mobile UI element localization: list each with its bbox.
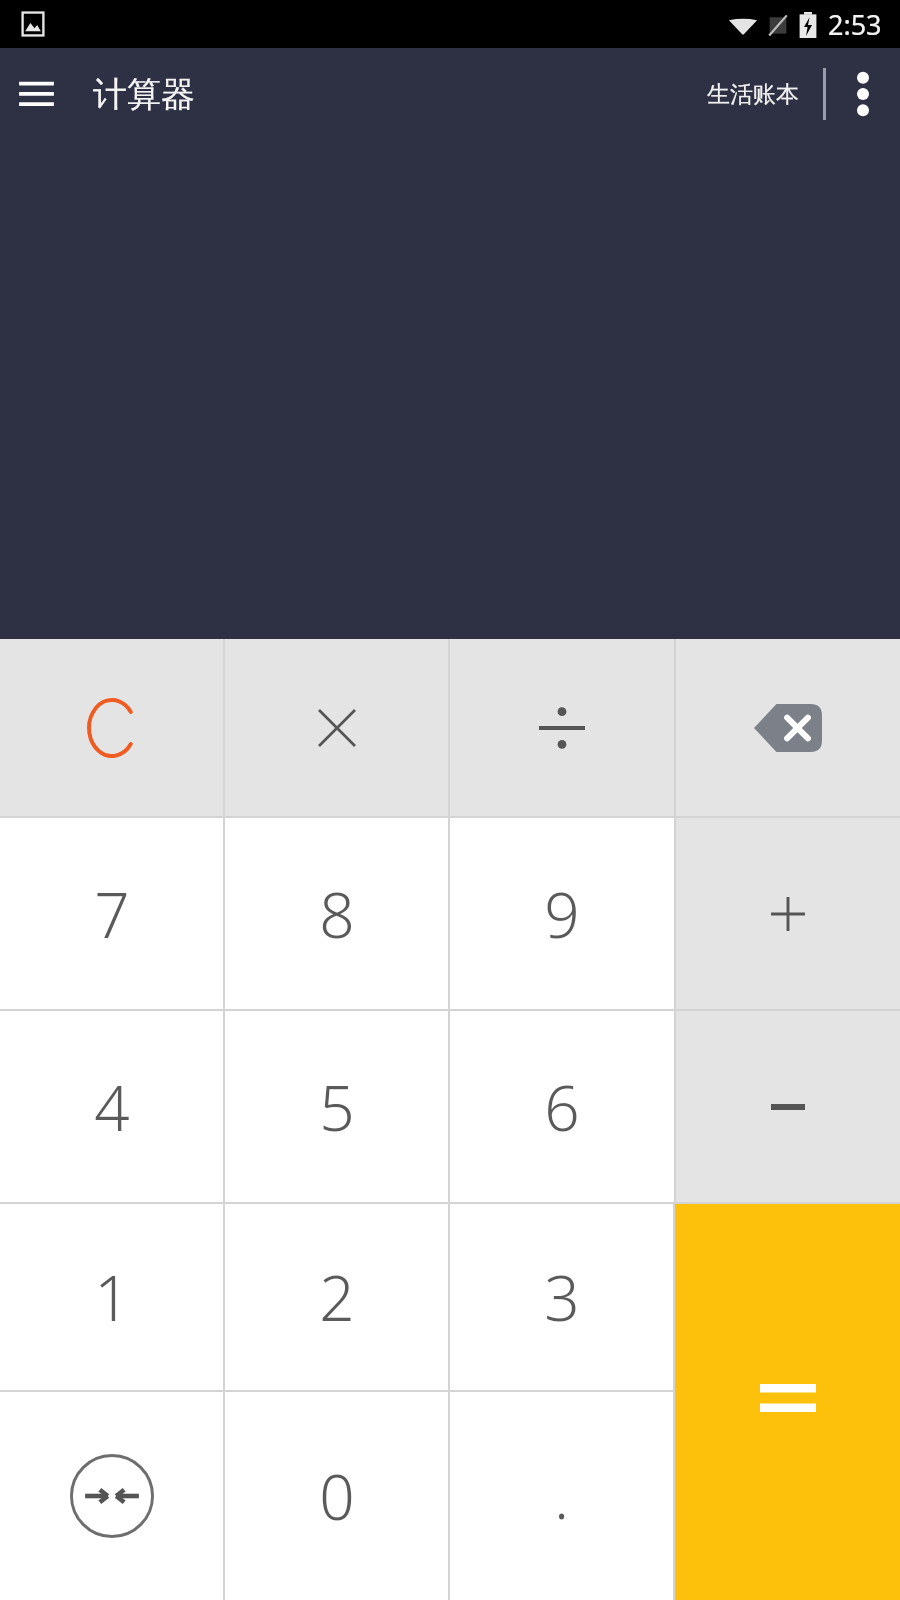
button[interactable]: 1 <box>0 1204 223 1390</box>
button[interactable]: Divide <box>450 639 674 816</box>
button[interactable]: . <box>450 1392 673 1600</box>
staticText: 生活账本 <box>707 80 799 109</box>
staticText: . <box>554 1455 569 1537</box>
button[interactable]: Menu <box>6 64 66 124</box>
staticText: 计算器 <box>93 73 195 116</box>
button[interactable]: Backspace <box>676 639 900 816</box>
button[interactable]: More options <box>826 48 900 140</box>
button[interactable]: Plus <box>676 818 900 1009</box>
button[interactable]: 3 <box>450 1204 673 1390</box>
button[interactable]: 8 <box>225 818 448 1009</box>
staticText: 9 <box>544 872 580 956</box>
button[interactable]: 0 <box>225 1392 448 1600</box>
button[interactable]: Equals <box>675 1204 900 1600</box>
staticText: 2 <box>319 1255 355 1339</box>
button[interactable]: 2 <box>225 1204 448 1390</box>
button[interactable]: 9 <box>450 818 674 1009</box>
button[interactable]: Multiply <box>225 639 448 816</box>
button[interactable]: Minus <box>676 1011 900 1202</box>
staticText: 8 <box>319 872 355 956</box>
staticText: 4 <box>94 1065 130 1149</box>
button[interactable]: Collapse <box>0 1392 223 1600</box>
staticText: 5 <box>319 1065 355 1149</box>
staticText: 6 <box>544 1065 580 1149</box>
button[interactable]: 6 <box>450 1011 674 1202</box>
button[interactable]: 4 <box>0 1011 223 1202</box>
button[interactable]: Clear <box>0 639 223 816</box>
staticText: 0 <box>319 1454 355 1538</box>
button[interactable]: 生活账本 <box>697 64 809 125</box>
staticText: 3 <box>544 1255 580 1339</box>
staticText: 1 <box>94 1255 130 1339</box>
button[interactable]: 7 <box>0 818 223 1009</box>
staticText: 2:53 <box>828 6 882 43</box>
button[interactable]: 5 <box>225 1011 448 1202</box>
staticText: 7 <box>94 872 130 956</box>
